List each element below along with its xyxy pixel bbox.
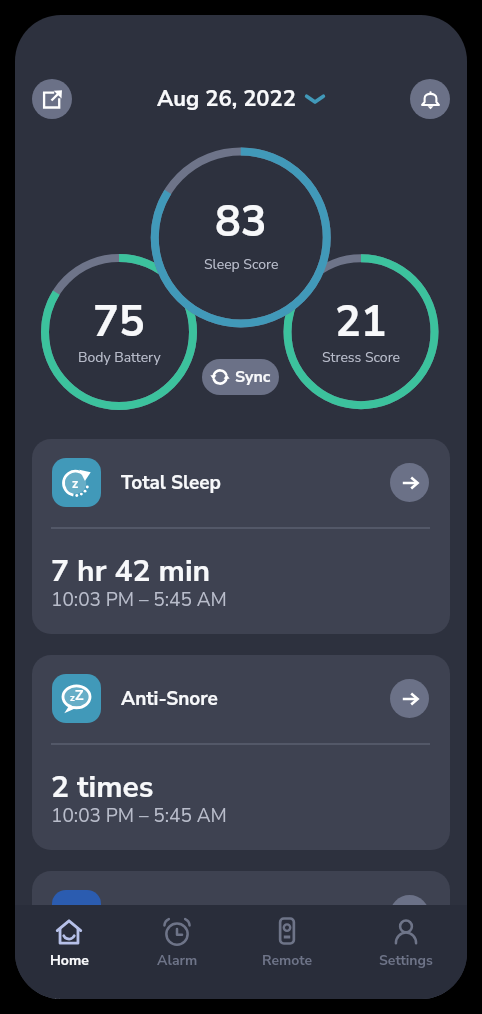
staticText: Settings (379, 951, 433, 970)
staticText: Respiratory Rate (121, 902, 270, 928)
button[interactable]: z (32, 439, 450, 634)
staticText: Total Sleep (121, 470, 221, 496)
staticText: 2 times (51, 767, 154, 801)
button[interactable]: Home (15, 905, 123, 999)
button[interactable]: Open Anti-Snore (390, 679, 429, 718)
staticText: Z (75, 686, 84, 705)
staticText: Alarm (157, 951, 198, 970)
staticText: 83 (215, 193, 267, 252)
button[interactable]: Notifications (410, 79, 450, 119)
staticText: 21 (335, 293, 387, 352)
staticText: Sync (235, 366, 271, 388)
staticText: Home (50, 951, 89, 970)
button[interactable]: Sync (202, 359, 279, 395)
button[interactable]: Settings (351, 905, 461, 999)
button[interactable]: Open Total Sleep (390, 463, 429, 502)
staticText: 75 (93, 293, 145, 352)
button[interactable]: Respiratory Rate (32, 871, 450, 999)
staticText: 10:03 PM – 5:45 AM (51, 803, 227, 829)
button[interactable]: Open Respiratory Rate (390, 895, 429, 934)
button[interactable]: Remote (232, 905, 342, 999)
staticText: Stress Score (322, 348, 401, 367)
staticText: Aug 26, 2022 (157, 84, 296, 114)
staticText: 7 hr 42 min (51, 551, 211, 585)
button[interactable]: Alarm (124, 905, 230, 999)
staticText: Anti-Snore (121, 686, 218, 712)
staticText: z (70, 691, 75, 705)
staticText: Sleep Score (204, 255, 279, 274)
button[interactable]: Share (32, 79, 72, 119)
staticText: z (72, 475, 79, 493)
button[interactable]: z (32, 655, 450, 850)
staticText: Body Battery (78, 348, 161, 367)
staticText: 10:03 PM – 5:45 AM (51, 587, 227, 613)
staticText: Remote (262, 951, 313, 970)
